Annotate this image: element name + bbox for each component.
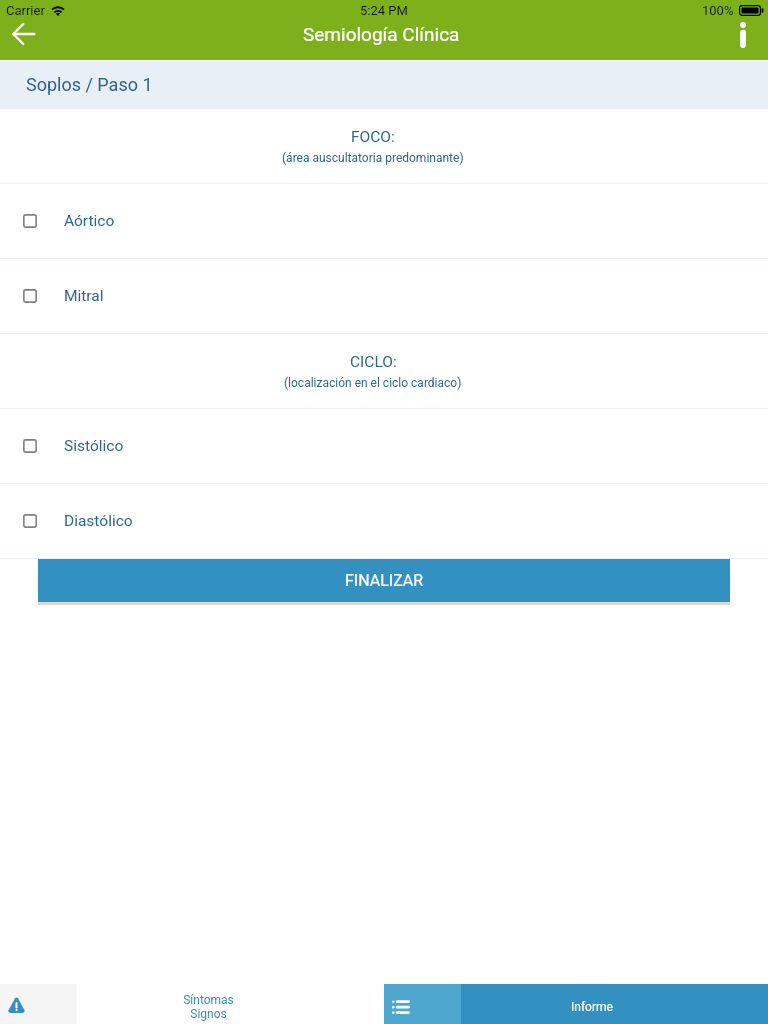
button[interactable]: Alertas	[0, 984, 384, 1024]
other: Alertas	[8, 997, 25, 1013]
button[interactable]: FINALIZAR	[38, 559, 730, 602]
staticText: (área auscultatoria predominante)	[282, 151, 464, 165]
staticText: Soplos / Paso 1	[26, 74, 153, 95]
staticText: Aórtico	[64, 212, 115, 230]
staticText: Mitral	[64, 287, 104, 305]
staticText: FOCO:	[351, 128, 395, 146]
button[interactable]: Mitral	[0, 259, 768, 333]
button[interactable]: Back	[0, 15, 46, 53]
staticText: Diastólico	[64, 512, 133, 530]
staticText: CICLO:	[350, 353, 397, 371]
staticText: Sistólico	[64, 437, 124, 455]
other: Lista	[392, 1000, 409, 1014]
staticText: Carrier	[6, 3, 45, 18]
staticText: 100%	[702, 3, 734, 18]
staticText: 5:24 PM	[360, 3, 408, 18]
button[interactable]: Aórtico	[0, 184, 768, 258]
staticText: (localización en el ciclo cardiaco)	[284, 376, 462, 390]
staticText: FINALIZAR	[345, 571, 424, 590]
button[interactable]: Info	[718, 15, 768, 53]
button[interactable]: Soplos / Paso 1	[0, 60, 768, 109]
button[interactable]: Lista	[384, 984, 768, 1024]
button[interactable]: Diastólico	[0, 484, 768, 558]
button[interactable]: Sistólico	[0, 409, 768, 483]
staticText: Informe	[571, 1000, 613, 1014]
staticText: Síntomas Signos	[183, 993, 234, 1021]
staticText: Semiología Clínica	[303, 23, 460, 45]
